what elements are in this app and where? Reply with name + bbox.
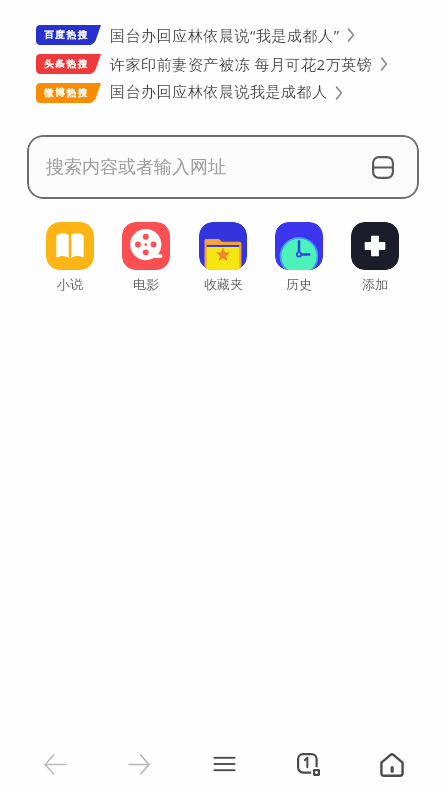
- button[interactable]: 收藏夹: [195, 222, 251, 292]
- button[interactable]: Forward: [115, 740, 163, 788]
- staticText: 国台办回应林依晨说“我是成都人”: [110, 25, 340, 45]
- button[interactable]: 添加: [347, 222, 403, 292]
- button[interactable]: 微博热搜: [0, 78, 445, 107]
- button[interactable]: 百度热搜: [0, 20, 445, 49]
- button[interactable]: 历史: [271, 222, 327, 292]
- button[interactable]: Menu: [200, 740, 248, 788]
- staticText: 许家印前妻资产被冻 每月可花2万英镑: [110, 54, 373, 74]
- button[interactable]: 头条热搜: [0, 49, 445, 78]
- staticText: 搜索内容或者输入网址: [46, 156, 226, 179]
- staticText: 微博热搜: [44, 87, 90, 99]
- button[interactable]: Tabs: [284, 740, 332, 788]
- button[interactable]: Home: [368, 740, 416, 788]
- staticText: 收藏夹: [204, 276, 243, 292]
- button[interactable]: 电影: [118, 222, 174, 292]
- button[interactable]: 搜索内容或者输入网址: [27, 135, 419, 199]
- staticText: 国台办回应林依晨说我是成都人: [110, 83, 328, 102]
- staticText: 头条热搜: [44, 58, 90, 70]
- button[interactable]: 小说: [42, 222, 98, 292]
- staticText: 百度热搜: [44, 29, 90, 41]
- button[interactable]: Back: [31, 740, 79, 788]
- staticText: 电影: [133, 276, 159, 292]
- staticText: 历史: [286, 276, 312, 292]
- staticText: 添加: [362, 276, 388, 292]
- staticText: 小说: [57, 276, 83, 292]
